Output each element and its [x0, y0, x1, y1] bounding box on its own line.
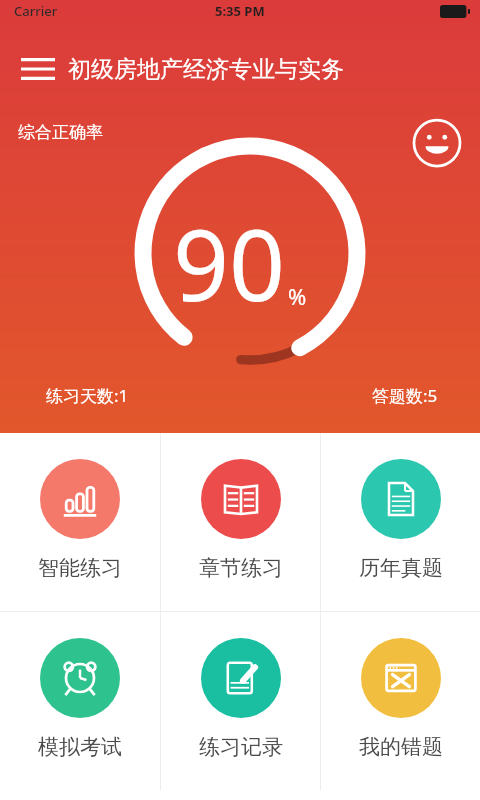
staticText: 我的错题	[359, 734, 443, 760]
button[interactable]: Menu	[14, 45, 62, 93]
button[interactable]: 我的错题	[321, 612, 480, 790]
staticText: 初级房地产经济专业与实务	[68, 55, 344, 84]
staticText: 练习天数:1	[46, 384, 129, 407]
staticText: Carrier	[14, 2, 58, 20]
button[interactable]: 模拟考试	[0, 612, 160, 790]
staticText: 练习记录	[199, 734, 283, 760]
staticText: 5:35 PM	[215, 2, 265, 20]
staticText: 模拟考试	[38, 734, 122, 760]
button[interactable]: 章节练习	[161, 433, 320, 611]
staticText: 智能练习	[38, 555, 122, 581]
button[interactable]: 历年真题	[321, 433, 480, 611]
button[interactable]: Mood	[412, 118, 462, 168]
staticText: 90	[173, 196, 286, 329]
staticText: %	[288, 281, 307, 311]
staticText: 历年真题	[359, 555, 443, 581]
staticText: 答题数:5	[372, 384, 438, 407]
staticText: 章节练习	[199, 555, 283, 581]
button[interactable]: 练习记录	[161, 612, 320, 790]
staticText: 综合正确率	[18, 122, 103, 143]
button[interactable]: 智能练习	[0, 433, 160, 611]
